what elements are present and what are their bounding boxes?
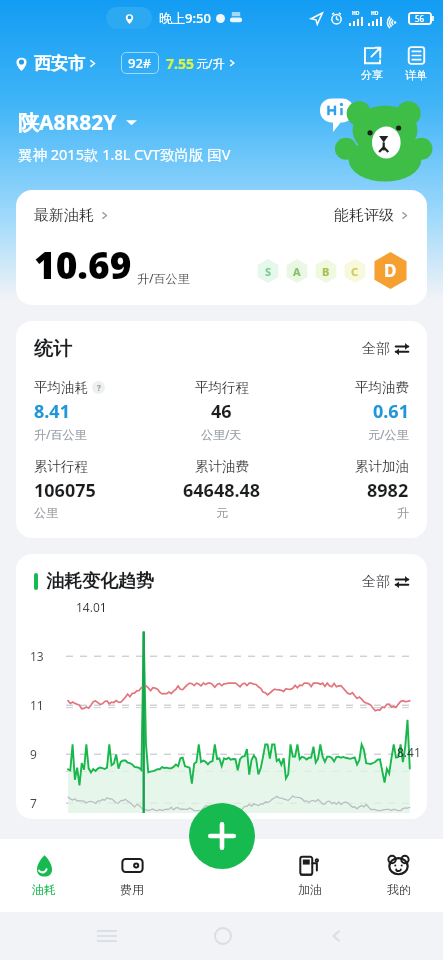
button[interactable]: 详单 — [401, 45, 431, 82]
staticText: 元 — [216, 505, 228, 520]
button[interactable]: 累计加油 — [284, 458, 409, 520]
button[interactable]: 西安市 — [14, 53, 97, 74]
staticText: 8982 — [367, 478, 409, 503]
button[interactable]: 加油 — [265, 839, 354, 912]
staticText: 平均行程 — [195, 379, 249, 396]
staticText: 升/百公里 — [34, 426, 87, 442]
staticText: 油耗变化趋势 — [46, 570, 154, 593]
staticText: 公里/天 — [201, 426, 242, 442]
staticText: 翼神 2015款 1.8L CVT致尚版 国V — [18, 144, 231, 164]
button[interactable]: 累计行程 — [34, 458, 159, 520]
staticText: 8.41 — [397, 744, 421, 760]
button[interactable]: 全部 — [362, 340, 409, 358]
staticText: 详单 — [405, 68, 427, 82]
staticText: 11 — [30, 697, 44, 713]
staticText: 7 — [30, 795, 37, 811]
button[interactable]: 平均行程 — [159, 379, 284, 442]
button[interactable]: 费用 — [88, 839, 176, 912]
button[interactable]: 能耗评级 — [334, 206, 409, 225]
staticText: HD — [352, 10, 360, 17]
staticText: 升 — [397, 505, 409, 520]
staticText: 56 — [415, 13, 425, 24]
button[interactable]: 平均油费 — [284, 379, 409, 442]
staticText: 14.01 — [76, 599, 107, 615]
staticText: 全部 — [362, 573, 390, 591]
staticText: 晚上9:50 — [159, 9, 211, 27]
staticText: 64648.48 — [183, 478, 261, 503]
staticText: 统计 — [34, 337, 72, 361]
staticText: 油耗 — [32, 882, 56, 897]
staticText: 全部 — [362, 340, 390, 358]
staticText: 平均油费 — [355, 379, 409, 396]
staticText: 能耗评级 — [334, 206, 394, 225]
button[interactable]: 油耗 — [0, 839, 88, 912]
staticText: 陕A8R82Y — [18, 108, 117, 137]
staticText: 累计油费 — [195, 458, 249, 475]
staticText: 92# — [128, 54, 152, 72]
staticText: ? — [97, 382, 101, 393]
button[interactable]: 分享 — [357, 45, 387, 82]
staticText: 9 — [30, 746, 37, 762]
staticText: 元/公里 — [368, 426, 409, 442]
staticText: 公里 — [34, 505, 58, 520]
staticText: 7.55 — [166, 54, 194, 73]
staticText: HD — [371, 10, 379, 17]
button[interactable]: 全部 — [362, 573, 409, 591]
button[interactable]: 累计油费 — [159, 458, 284, 520]
staticText: 最新油耗 — [34, 206, 94, 225]
staticText: B — [322, 264, 330, 279]
button[interactable]: 平均油耗 — [34, 379, 159, 442]
staticText: A — [293, 264, 301, 279]
staticText: 46 — [211, 399, 232, 424]
button[interactable]: 我的 — [354, 839, 443, 912]
staticText: 元/升 — [196, 55, 225, 71]
staticText: 0.61 — [373, 399, 409, 424]
staticText: S — [265, 264, 272, 279]
staticText: 累计加油 — [355, 458, 409, 475]
staticText: 平均油耗 — [34, 379, 88, 396]
staticText: 我的 — [387, 882, 411, 897]
staticText: 升/百公里 — [137, 270, 190, 286]
staticText: 西安市 — [34, 53, 85, 74]
staticText: 8.41 — [34, 399, 70, 424]
button[interactable]: 92# — [121, 52, 236, 74]
staticText: C — [351, 264, 359, 279]
staticText: 费用 — [120, 882, 144, 897]
staticText: D — [384, 259, 397, 282]
staticText: 累计行程 — [34, 458, 88, 475]
staticText: 10.69 — [34, 239, 132, 289]
staticText: 分享 — [361, 68, 383, 82]
staticText: 13 — [30, 648, 44, 664]
button[interactable]: 最新油耗 — [34, 206, 109, 225]
button[interactable]: 陕A8R82Y — [18, 108, 137, 137]
staticText: 106075 — [34, 478, 96, 503]
button[interactable]: 记一笔 — [189, 803, 255, 869]
staticText: 加油 — [298, 882, 322, 897]
